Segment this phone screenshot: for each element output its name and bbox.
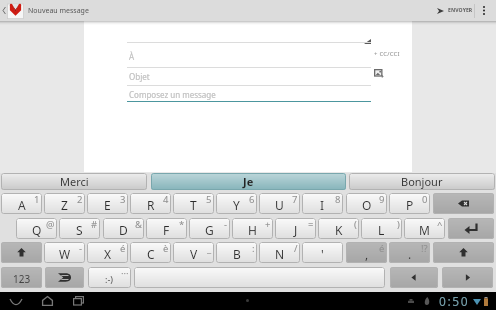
button[interactable]: W bbox=[44, 242, 85, 263]
staticText: @ bbox=[46, 218, 55, 231]
button[interactable]: I bbox=[302, 193, 343, 214]
staticText: D bbox=[119, 222, 128, 238]
staticText: Composez un message bbox=[129, 89, 216, 100]
button[interactable]: C bbox=[130, 242, 171, 263]
button[interactable] bbox=[390, 267, 438, 288]
button[interactable]: M bbox=[404, 218, 445, 239]
staticText: ··· bbox=[121, 267, 129, 280]
button[interactable] bbox=[442, 267, 493, 288]
button[interactable]: Nouveau message bbox=[0, 0, 89, 21]
staticText: 123 bbox=[13, 272, 31, 286]
staticText: M bbox=[419, 222, 430, 238]
button[interactable]: Q bbox=[16, 218, 57, 239]
staticText: N bbox=[275, 246, 285, 262]
button[interactable]: E bbox=[87, 193, 128, 214]
staticText: U bbox=[275, 197, 284, 213]
staticText: Bonjour bbox=[401, 174, 443, 189]
button[interactable]: R bbox=[130, 193, 171, 214]
staticText: / bbox=[294, 242, 298, 255]
staticText: Objet bbox=[129, 71, 150, 82]
button[interactable]: H bbox=[232, 218, 273, 239]
staticText: 5 bbox=[206, 193, 212, 206]
staticText: B bbox=[233, 246, 241, 262]
staticText: K bbox=[335, 222, 343, 238]
button[interactable]: Merci bbox=[1, 173, 147, 190]
staticText: ) bbox=[397, 218, 400, 231]
button[interactable]: B bbox=[216, 242, 257, 263]
staticText: C bbox=[147, 246, 155, 262]
staticText: - bbox=[224, 218, 228, 231]
button[interactable] bbox=[433, 193, 494, 214]
button[interactable]: ' bbox=[302, 242, 343, 263]
button[interactable]: N bbox=[259, 242, 300, 263]
button[interactable]: K bbox=[318, 218, 359, 239]
button[interactable]: G bbox=[189, 218, 230, 239]
button[interactable]: T bbox=[173, 193, 214, 214]
button[interactable]: Je bbox=[151, 173, 346, 190]
staticText: !? bbox=[421, 242, 428, 255]
staticText: J bbox=[294, 222, 298, 238]
staticText: H bbox=[248, 222, 257, 238]
staticText: 8 bbox=[335, 193, 341, 206]
button[interactable]: J bbox=[275, 218, 316, 239]
staticText: E bbox=[104, 197, 111, 213]
button[interactable]: O bbox=[346, 193, 387, 214]
button[interactable]: V bbox=[173, 242, 214, 263]
staticText: F bbox=[163, 222, 170, 238]
staticText: = bbox=[308, 218, 314, 231]
button[interactable]: Home bbox=[32, 292, 62, 310]
button[interactable]: F bbox=[146, 218, 187, 239]
button[interactable]: P bbox=[389, 193, 430, 214]
button[interactable]: A bbox=[1, 193, 42, 214]
staticText: Je bbox=[243, 174, 254, 189]
staticText: ' bbox=[321, 246, 324, 262]
button[interactable]: + CC/CCI bbox=[374, 50, 400, 58]
button[interactable]: Recent apps bbox=[63, 292, 93, 310]
button[interactable]: S bbox=[59, 218, 100, 239]
staticText: , bbox=[365, 246, 369, 262]
button[interactable]: . bbox=[389, 242, 430, 263]
staticText: Nouveau message bbox=[28, 6, 89, 16]
button[interactable]: U bbox=[259, 193, 300, 214]
button[interactable] bbox=[1, 242, 42, 263]
staticText: 4 bbox=[163, 193, 169, 206]
staticText: V bbox=[190, 246, 198, 262]
button[interactable]: Y bbox=[216, 193, 257, 214]
staticText: P bbox=[406, 197, 414, 213]
button[interactable]: À bbox=[127, 43, 371, 67]
staticText: . bbox=[408, 246, 412, 262]
button[interactable] bbox=[448, 218, 494, 239]
button[interactable]: D bbox=[103, 218, 144, 239]
button[interactable] bbox=[433, 242, 494, 263]
button[interactable]: Back bbox=[1, 292, 31, 310]
button[interactable]: , bbox=[346, 242, 387, 263]
button[interactable]: :-) bbox=[88, 267, 131, 288]
staticText: X bbox=[104, 246, 112, 262]
staticText: 0 bbox=[422, 193, 428, 206]
staticText: 2 bbox=[77, 193, 83, 206]
button[interactable]: L bbox=[361, 218, 402, 239]
staticText: è bbox=[163, 242, 169, 255]
button[interactable] bbox=[45, 267, 84, 288]
staticText: À bbox=[129, 51, 135, 62]
staticText: ENVOYER bbox=[448, 7, 473, 14]
staticText: * bbox=[179, 218, 185, 231]
button[interactable]: X bbox=[87, 242, 128, 263]
button[interactable]: 123 bbox=[1, 267, 42, 288]
button[interactable]: Objet bbox=[127, 68, 371, 84]
button[interactable]: Composez un message bbox=[127, 86, 371, 101]
button[interactable]: More options bbox=[473, 0, 494, 21]
button[interactable]: Z bbox=[44, 193, 85, 214]
staticText: I bbox=[320, 197, 325, 213]
staticText: W bbox=[59, 246, 71, 262]
staticText: 3 bbox=[120, 193, 126, 206]
button[interactable]: Attach picture bbox=[374, 69, 384, 78]
button[interactable]: Bonjour bbox=[349, 173, 495, 190]
staticText: :-) bbox=[105, 273, 114, 285]
staticText: & bbox=[135, 218, 142, 231]
staticText: Merci bbox=[60, 174, 89, 189]
staticText: + bbox=[265, 218, 271, 231]
staticText: G bbox=[205, 222, 214, 238]
button[interactable] bbox=[134, 267, 385, 288]
button[interactable]: ENVOYER bbox=[434, 0, 476, 21]
